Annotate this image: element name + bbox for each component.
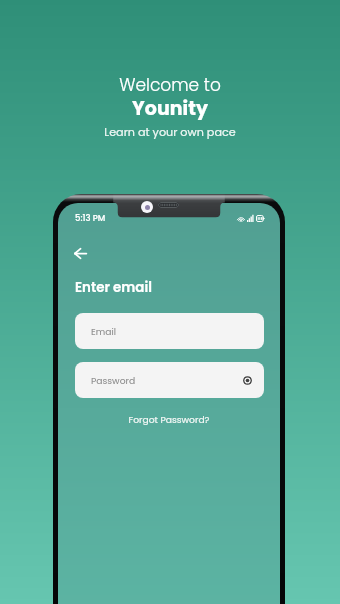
button[interactable]: Password — [75, 362, 264, 398]
staticText: Email — [91, 325, 116, 338]
button[interactable]: Email — [75, 313, 264, 349]
staticText: Younity — [0, 95, 340, 122]
staticText: Learn at your own pace — [0, 124, 340, 140]
staticText: Enter email — [75, 278, 152, 297]
button[interactable]: Forgot Password? — [58, 413, 280, 426]
staticText: 5:13 PM — [75, 212, 106, 224]
staticText: Password — [91, 374, 136, 387]
staticText: Welcome to — [0, 73, 340, 97]
button[interactable]: Show password — [240, 373, 254, 387]
button[interactable]: Back — [69, 242, 91, 264]
